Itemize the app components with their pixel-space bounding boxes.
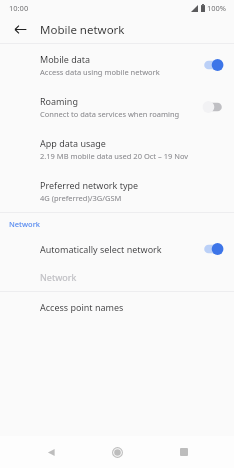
button[interactable]: App data usage bbox=[0, 128, 234, 170]
button[interactable]: Toggle on bbox=[202, 242, 224, 256]
staticText: 2.19 MB mobile data used 20 Oct – 19 Nov bbox=[40, 151, 189, 161]
staticText: Preferred network type bbox=[40, 179, 139, 191]
button[interactable]: Network bbox=[0, 263, 234, 291]
staticText: Mobile data bbox=[40, 53, 91, 65]
button[interactable]: Automatically select network bbox=[0, 235, 234, 263]
staticText: 100% bbox=[207, 3, 227, 13]
staticText: Access data using mobile network bbox=[40, 67, 160, 77]
staticText: 10:00 bbox=[9, 3, 29, 13]
staticText: Automatically select network bbox=[40, 243, 162, 255]
staticText: Network bbox=[40, 271, 77, 283]
button[interactable]: Toggle off bbox=[202, 100, 224, 114]
staticText: Network bbox=[9, 219, 40, 229]
staticText: 4G (preferred)/3G/GSM bbox=[40, 193, 122, 203]
staticText: Access point names bbox=[40, 301, 124, 313]
staticText: Roaming bbox=[40, 95, 78, 107]
button[interactable]: Mobile data bbox=[0, 44, 234, 86]
staticText: Connect to data services when roaming bbox=[40, 109, 180, 119]
button[interactable]: Access point names bbox=[0, 292, 234, 322]
button[interactable]: Roaming bbox=[0, 86, 234, 128]
staticText: App data usage bbox=[40, 137, 106, 149]
button[interactable]: Home bbox=[101, 436, 133, 468]
button[interactable]: Preferred network type bbox=[0, 170, 234, 212]
button[interactable]: Back bbox=[6, 16, 34, 43]
staticText: Mobile network bbox=[40, 22, 125, 38]
button[interactable]: Toggle on bbox=[202, 58, 224, 72]
button[interactable]: Back bbox=[35, 436, 67, 468]
button[interactable]: Recent apps bbox=[168, 436, 200, 468]
